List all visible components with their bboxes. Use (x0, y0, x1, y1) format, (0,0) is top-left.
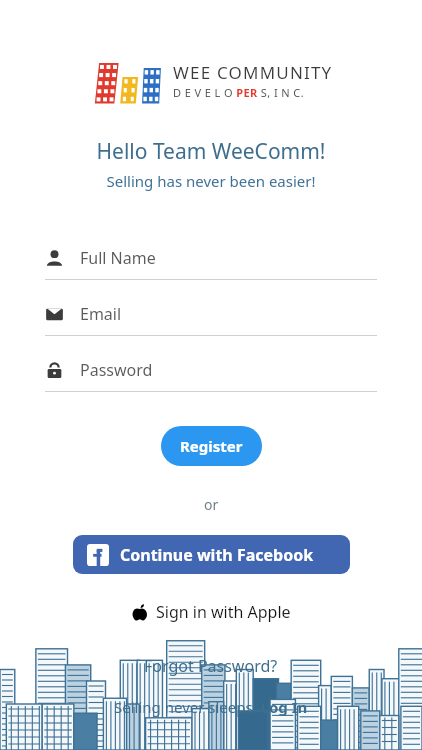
staticText: Sign in with Apple (156, 601, 291, 623)
staticText: Selling has never been easier! (106, 171, 316, 191)
staticText: Register (180, 436, 243, 456)
staticText: Full Name (80, 247, 156, 269)
button[interactable]: Selling never sleeps. Log In (114, 697, 308, 717)
staticText: Password (80, 359, 153, 381)
staticText: Continue with Facebook (120, 544, 314, 566)
staticText: WEE COMMUNITY (173, 61, 333, 84)
button[interactable]: Continue with Facebook (73, 535, 350, 574)
button[interactable]: Register (161, 426, 262, 466)
staticText: D E V E L O PER S, I N C. (173, 85, 304, 100)
button[interactable]: Full Name (45, 237, 377, 293)
button[interactable]: Sign in with Apple (99, 592, 323, 631)
staticText: Forgot Password? (144, 655, 278, 677)
staticText: Selling never sleeps. Log In (114, 697, 308, 717)
staticText: Hello Team WeeComm! (96, 137, 326, 166)
button[interactable]: Password (45, 349, 377, 405)
button[interactable]: Forgot Password? (144, 655, 278, 677)
staticText: or (204, 495, 219, 514)
button[interactable]: Email (45, 293, 377, 349)
staticText: Email (80, 303, 122, 325)
